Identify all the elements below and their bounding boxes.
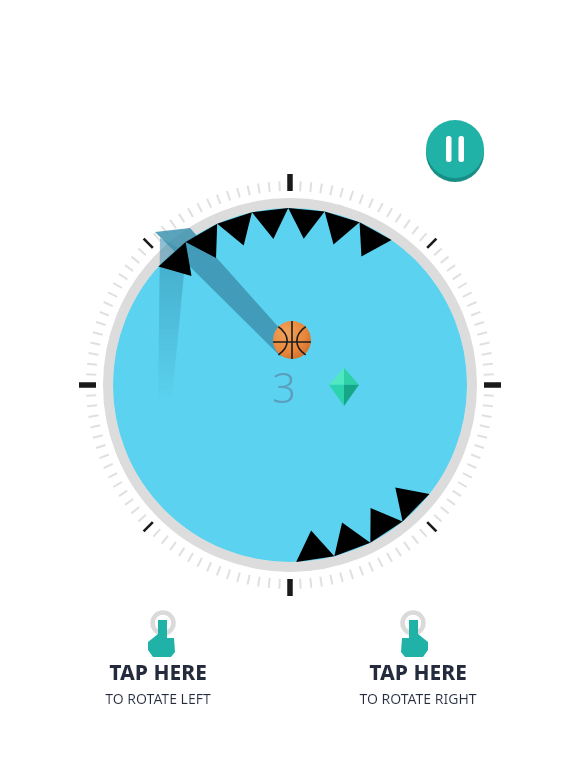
- staticText: 3: [272, 358, 296, 415]
- button[interactable]: Rotate left: [62, 612, 254, 722]
- staticText: TAP HERE: [369, 658, 467, 687]
- button[interactable]: Rotate right: [322, 612, 514, 722]
- staticText: TO ROTATE RIGHT: [359, 689, 477, 708]
- button[interactable]: Pause: [423, 117, 487, 181]
- staticText: TAP HERE: [109, 658, 207, 687]
- staticText: TO ROTATE LEFT: [105, 689, 211, 708]
